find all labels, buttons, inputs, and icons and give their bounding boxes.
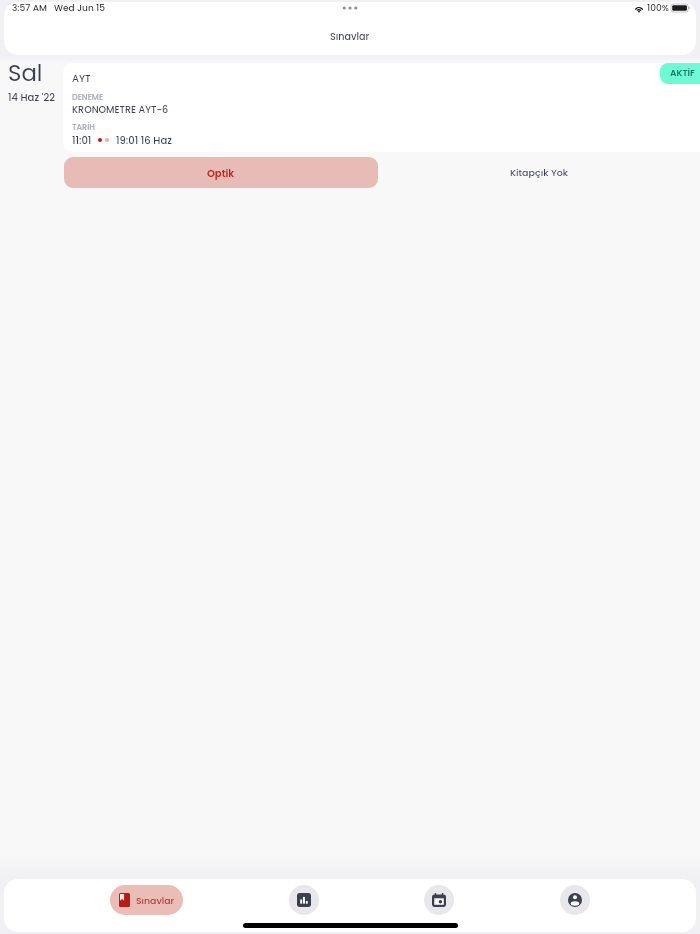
button[interactable]: Sınavlar bbox=[110, 885, 183, 915]
staticText: Sınavlar bbox=[330, 30, 370, 43]
staticText: Kitapçık Yok bbox=[510, 166, 568, 179]
button[interactable]: AKTİF bbox=[660, 63, 700, 84]
staticText: DENEME bbox=[72, 92, 104, 103]
button[interactable]: AYT bbox=[63, 63, 700, 152]
staticText: AKTİF bbox=[670, 67, 695, 80]
staticText: KRONOMETRE AYT-6 bbox=[72, 103, 169, 116]
staticText: 3:57 AM bbox=[12, 2, 47, 13]
staticText: Sal bbox=[8, 57, 43, 82]
button[interactable]: Kitapçık Yok bbox=[378, 157, 700, 188]
staticText: TARİH bbox=[72, 122, 95, 133]
staticText: 100% bbox=[647, 2, 669, 13]
button[interactable]: Profile bbox=[560, 885, 590, 915]
button[interactable]: Statistics bbox=[289, 885, 319, 915]
button[interactable]: Optik bbox=[64, 157, 378, 188]
staticText: 19:01 16 Haz bbox=[116, 133, 172, 147]
staticText: Optik bbox=[207, 166, 235, 180]
staticText: 11:01 bbox=[72, 133, 92, 147]
button[interactable]: Calendar bbox=[424, 885, 454, 915]
staticText: Sınavlar bbox=[136, 894, 175, 907]
staticText: 14 Haz '22 bbox=[8, 90, 55, 104]
staticText: Wed Jun 15 bbox=[54, 2, 105, 13]
staticText: AYT bbox=[72, 71, 91, 85]
